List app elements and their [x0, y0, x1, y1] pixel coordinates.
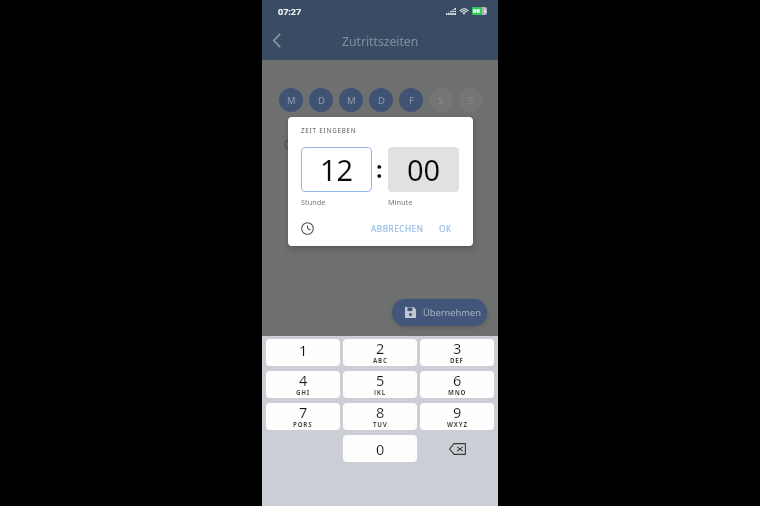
- staticText: 4: [299, 371, 308, 390]
- staticText: GHI: [296, 388, 311, 395]
- button[interactable]: 5: [343, 371, 417, 398]
- staticText: TUV: [373, 420, 388, 427]
- staticText: 2: [376, 339, 385, 358]
- staticText: ABBRECHEN: [371, 223, 424, 234]
- staticText: 1: [299, 340, 308, 360]
- staticText: F: [409, 94, 414, 107]
- button[interactable]: Back: [263, 26, 291, 54]
- button[interactable]: M: [339, 88, 363, 112]
- button[interactable]: D: [309, 88, 333, 112]
- button[interactable]: Switch to clock input: [297, 218, 317, 238]
- staticText: D: [318, 94, 325, 107]
- button[interactable]: S: [459, 88, 483, 112]
- staticText: DEF: [450, 356, 464, 363]
- staticText: S: [438, 94, 444, 107]
- staticText: 0: [284, 135, 292, 153]
- button[interactable]: ABBRECHEN: [366, 219, 429, 238]
- staticText: M: [347, 94, 356, 107]
- button[interactable]: 4: [266, 371, 340, 398]
- button[interactable]: 00: [388, 147, 459, 192]
- staticText: D: [378, 94, 385, 107]
- staticText: Zutrittszeiten: [342, 33, 419, 50]
- staticText: 7: [299, 403, 308, 422]
- staticText: 12: [320, 150, 354, 189]
- button[interactable]: 8: [343, 403, 417, 430]
- button[interactable]: 7: [266, 403, 340, 430]
- button[interactable]: 2: [343, 339, 417, 366]
- button[interactable]: D: [369, 88, 393, 112]
- button[interactable]: Übernehmen: [392, 299, 487, 326]
- staticText: 5: [376, 371, 385, 390]
- button[interactable]: Backspace: [420, 435, 494, 462]
- button[interactable]: 6: [420, 371, 494, 398]
- staticText: ABC: [373, 356, 388, 363]
- staticText: MNO: [448, 388, 467, 395]
- staticText: WXYZ: [447, 420, 468, 427]
- staticText: :: [376, 153, 383, 184]
- staticText: OK: [439, 223, 452, 234]
- staticText: Übernehmen: [423, 306, 482, 319]
- staticText: PQRS: [293, 420, 313, 427]
- button[interactable]: 0: [343, 435, 417, 462]
- staticText: 00: [407, 150, 441, 189]
- staticText: S: [468, 94, 474, 107]
- button[interactable]: 3: [420, 339, 494, 366]
- staticText: 66: [473, 7, 480, 15]
- staticText: 0: [376, 439, 385, 459]
- button[interactable]: M: [279, 88, 303, 112]
- staticText: ZEIT EINGEBEN: [301, 126, 357, 135]
- button[interactable]: 12: [301, 147, 372, 192]
- staticText: 9: [453, 403, 462, 422]
- staticText: 8: [376, 403, 385, 422]
- staticText: Stunde: [301, 197, 326, 207]
- staticText: 07:27: [278, 5, 302, 17]
- staticText: M: [287, 94, 296, 107]
- button[interactable]: OK: [434, 219, 457, 238]
- button[interactable]: 9: [420, 403, 494, 430]
- button[interactable]: 1: [266, 339, 340, 366]
- staticText: JKL: [374, 388, 387, 395]
- staticText: 6: [453, 371, 462, 390]
- staticText: Minute: [388, 197, 413, 207]
- button[interactable]: S: [429, 88, 453, 112]
- staticText: 3: [453, 339, 462, 358]
- button[interactable]: F: [399, 88, 423, 112]
